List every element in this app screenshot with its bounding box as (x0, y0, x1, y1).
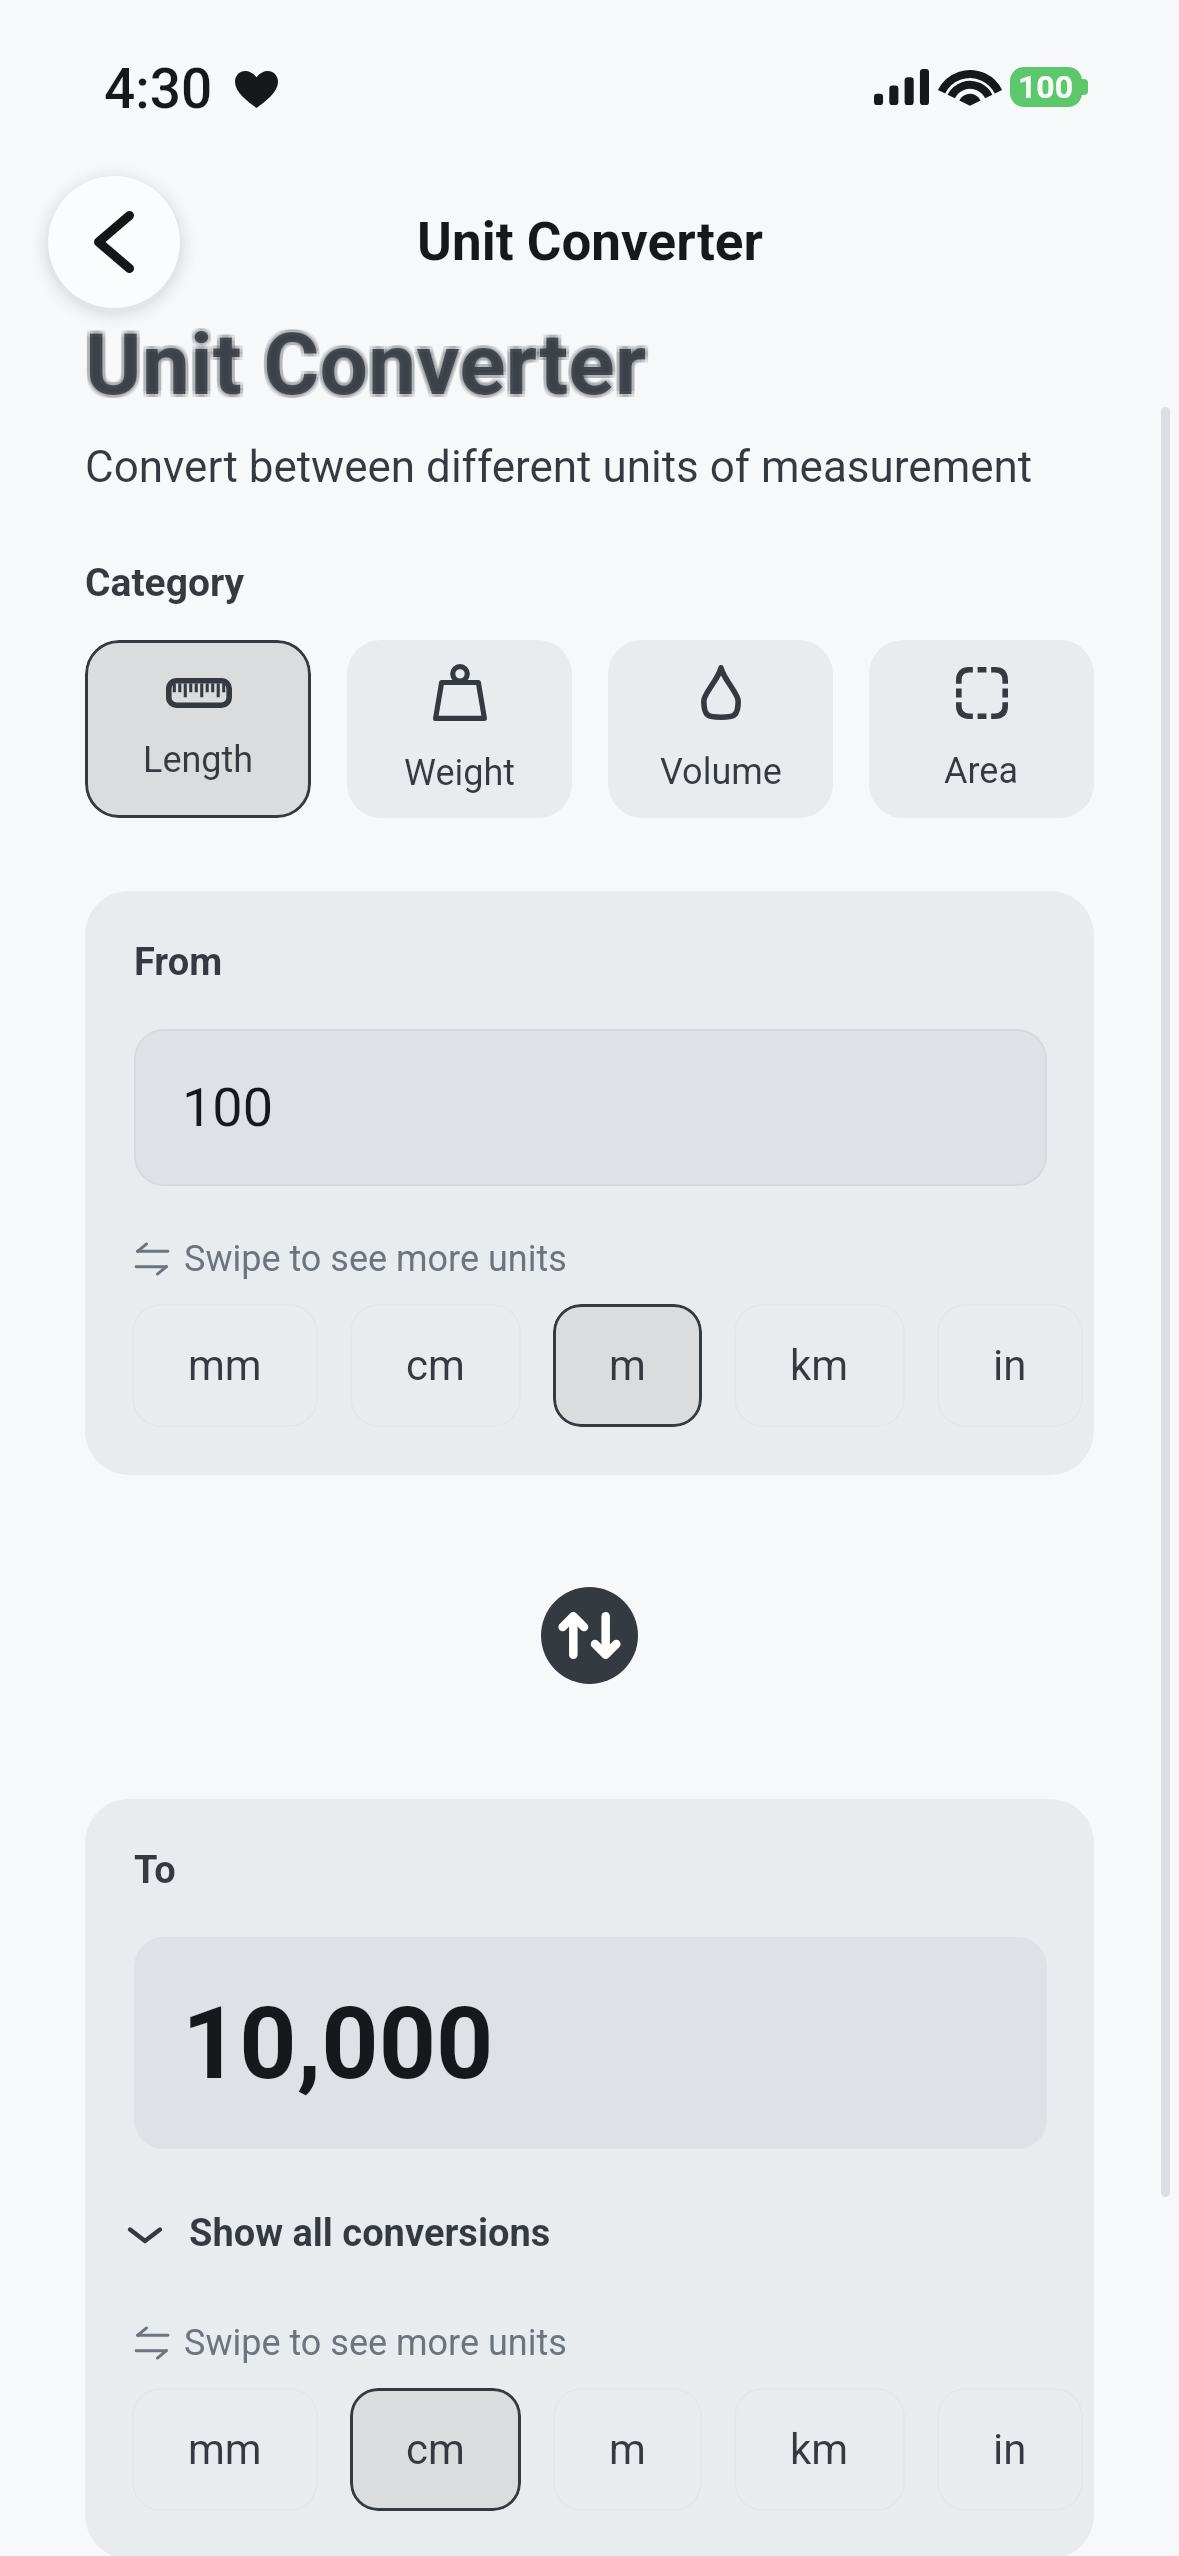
button[interactable]: mm (132, 2388, 318, 2511)
staticText: cm (406, 2425, 465, 2474)
staticText: Unit Converter (85, 317, 647, 418)
staticText: km (790, 2425, 849, 2474)
staticText: Swipe to see more units (184, 1238, 567, 1280)
button[interactable]: Show all conversions (123, 2211, 551, 2256)
staticText: 100 (1018, 68, 1074, 106)
staticText: Convert between different units of measu… (85, 441, 1033, 493)
button[interactable]: in (937, 1304, 1083, 1427)
staticText: m (609, 2425, 646, 2474)
staticText: mm (188, 2425, 262, 2474)
button[interactable]: cm (350, 1304, 521, 1427)
button[interactable]: m (553, 2388, 702, 2511)
staticText: Unit Converter (82, 314, 644, 415)
staticText: cm (406, 1341, 465, 1390)
button[interactable]: Weight (347, 640, 572, 818)
staticText: Show all conversions (189, 2211, 551, 2256)
button[interactable]: km (734, 2388, 905, 2511)
button[interactable]: km (734, 1304, 905, 1427)
button[interactable]: Area (869, 640, 1094, 818)
staticText: To (134, 1848, 176, 1893)
button[interactable]: Volume (608, 640, 833, 818)
staticText: Unit Converter (88, 314, 650, 415)
staticText: Weight (404, 752, 516, 794)
staticText: Length (143, 739, 254, 781)
staticText: Volume (660, 751, 782, 793)
staticText: km (790, 1341, 849, 1390)
button[interactable]: cm (350, 2388, 521, 2511)
button[interactable]: m (553, 1304, 702, 1427)
button[interactable]: in (937, 2388, 1083, 2511)
staticText: Unit Converter (85, 314, 647, 415)
staticText: Unit Converter (88, 311, 650, 412)
staticText: mm (188, 1341, 262, 1390)
staticText: Unit Converter (82, 317, 644, 418)
staticText: Swipe to see more units (184, 2322, 567, 2364)
button[interactable]: Swap units (541, 1587, 638, 1684)
staticText: Unit Converter (82, 311, 644, 412)
staticText: From (134, 940, 223, 985)
staticText: in (993, 1341, 1027, 1390)
staticText: Unit Converter (85, 311, 647, 412)
button[interactable]: Back (48, 176, 180, 308)
staticText: Unit Converter (417, 211, 763, 273)
staticText: Category (85, 560, 245, 606)
staticText: Area (944, 750, 1019, 792)
button[interactable]: Length (85, 640, 311, 818)
button[interactable]: 10,000 (134, 1937, 1047, 2149)
staticText: 4:30 (104, 57, 213, 121)
button[interactable]: mm (132, 1304, 318, 1427)
staticText: 100 (182, 1076, 274, 1139)
staticText: m (609, 1341, 646, 1390)
button[interactable]: 100 (134, 1029, 1047, 1186)
staticText: Unit Converter (88, 317, 650, 418)
staticText: in (993, 2425, 1027, 2474)
staticText: 10,000 (182, 1985, 494, 2102)
